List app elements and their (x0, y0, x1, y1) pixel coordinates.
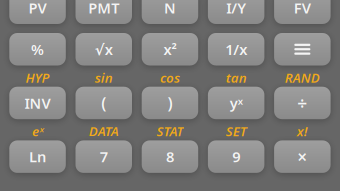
staticText: x² (163, 39, 176, 59)
staticText: Ln (29, 147, 46, 166)
button[interactable]: ( (75, 87, 132, 119)
staticText: I/Y (226, 0, 246, 17)
staticText: PV (29, 0, 47, 17)
staticText: yˣ (230, 93, 243, 113)
staticText: SET (226, 122, 247, 140)
button[interactable]: PV (9, 0, 66, 24)
staticText: ) (167, 92, 172, 113)
staticText: STAT (156, 122, 183, 140)
staticText: cos (160, 69, 180, 86)
button[interactable]: 1/x (208, 33, 264, 65)
button[interactable]: I/Y (208, 0, 264, 24)
staticText: 7 (100, 147, 108, 166)
button[interactable]: × (274, 140, 331, 173)
button[interactable]: x² (142, 33, 198, 65)
button[interactable]: Ln (9, 140, 66, 173)
staticText: FV (294, 0, 311, 17)
staticText: √x (95, 39, 113, 59)
staticText: % (31, 39, 44, 59)
staticText: x! (297, 122, 308, 140)
staticText: RAND (285, 69, 320, 86)
button[interactable]: 9 (208, 140, 264, 173)
button[interactable]: 7 (75, 140, 132, 173)
button[interactable]: N (142, 0, 198, 24)
staticText: INV (25, 93, 51, 113)
staticText: ( (101, 92, 106, 113)
button[interactable]: ) (142, 87, 198, 119)
staticText: 8 (166, 147, 174, 166)
button[interactable]: √x (75, 33, 132, 65)
button[interactable]: PMT (75, 0, 132, 24)
staticText: ÷ (297, 91, 307, 114)
staticText: × (297, 145, 307, 168)
button[interactable]: ÷ (274, 87, 331, 119)
staticText: sin (95, 69, 113, 86)
button[interactable]: yˣ (208, 87, 264, 119)
staticText: HYP (26, 69, 50, 86)
button[interactable]: 8 (142, 140, 198, 173)
staticText: 9 (232, 147, 240, 166)
staticText: eˣ (32, 122, 43, 140)
staticText: DATA (89, 122, 119, 140)
staticText: PMT (88, 0, 119, 17)
button[interactable]: INV (9, 87, 66, 119)
staticText: tan (226, 69, 247, 86)
button[interactable]: % (9, 33, 66, 65)
button[interactable]: Menu (274, 33, 331, 65)
staticText: N (164, 0, 176, 17)
staticText: 1/x (225, 39, 247, 59)
button[interactable]: FV (274, 0, 331, 24)
